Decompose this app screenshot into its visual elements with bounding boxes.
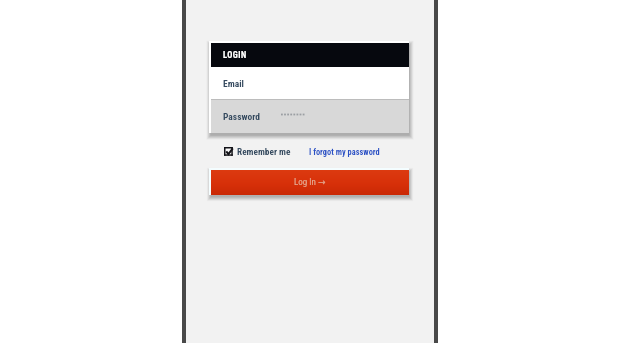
staticText: Password: [223, 111, 260, 122]
button[interactable]: Remember me checkbox: [224, 146, 291, 157]
button[interactable]: Password: [211, 100, 409, 133]
button[interactable]: Email: [211, 67, 409, 99]
button[interactable]: LOGIN: [211, 43, 409, 67]
other: Remember me checkbox: [224, 147, 234, 157]
staticText: Remember me: [237, 146, 291, 157]
staticText: Log In →: [294, 177, 326, 188]
button[interactable]: I forgot my password: [309, 147, 380, 157]
staticText: Email: [223, 78, 244, 89]
button[interactable]: Log In →: [211, 170, 409, 195]
staticText: LOGIN: [223, 50, 247, 60]
